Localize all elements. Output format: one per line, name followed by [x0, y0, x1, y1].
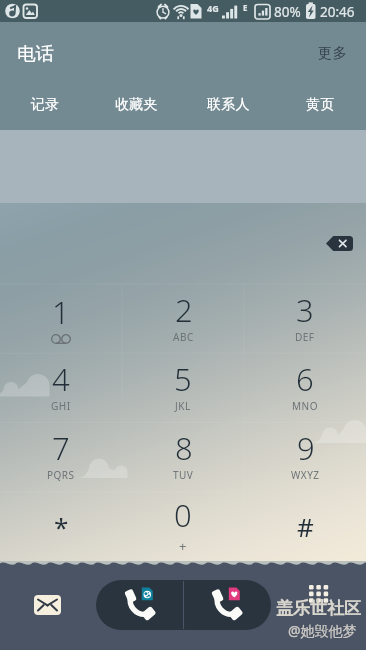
staticText: 8 [175, 427, 193, 469]
staticText: 80% [274, 3, 301, 21]
staticText: 2 [175, 289, 193, 331]
staticText: ABC [173, 330, 194, 344]
button[interactable]: 7 [0, 423, 122, 492]
button[interactable]: Backspace [326, 236, 353, 251]
staticText: 更多 [318, 44, 347, 62]
button[interactable]: Call with SIM 1 [96, 580, 183, 630]
staticText: GHI [51, 399, 71, 413]
staticText: 7 [52, 427, 70, 469]
button[interactable]: 2 [122, 284, 244, 354]
staticText: 记录 [31, 96, 60, 114]
staticText: # [297, 509, 314, 544]
staticText: 1 [52, 291, 70, 333]
staticText: 4 [52, 358, 70, 400]
staticText: PQRS [47, 468, 75, 482]
button[interactable]: 更多 [299, 30, 366, 76]
staticText: 黄页 [306, 96, 335, 114]
staticText: DEF [295, 330, 315, 344]
staticText: 盖乐世社区 [276, 598, 361, 619]
staticText: TUV [173, 468, 194, 482]
button[interactable]: Call with SIM 2 [183, 580, 271, 630]
staticText: 电话 [17, 42, 54, 65]
staticText: 4G [207, 2, 219, 14]
staticText: E [243, 2, 248, 13]
staticText: 0 [174, 494, 192, 536]
staticText: MNO [292, 399, 318, 413]
staticText: WXYZ [291, 468, 320, 482]
staticText: * [54, 509, 69, 544]
staticText: 5 [174, 358, 192, 400]
staticText: 9 [297, 427, 315, 469]
button[interactable]: 8 [122, 423, 244, 492]
button[interactable]: 4 [0, 354, 122, 423]
button[interactable]: 记录 [0, 74, 91, 130]
button[interactable]: 0 [122, 492, 244, 561]
staticText: 6 [296, 358, 314, 400]
button[interactable]: 收藏夹 [91, 74, 182, 130]
button[interactable]: # [244, 492, 366, 561]
staticText: @她毁他梦 [288, 621, 357, 640]
button[interactable]: 9 [244, 423, 366, 492]
button[interactable]: 3 [244, 284, 366, 354]
button[interactable]: 联系人 [182, 74, 274, 130]
button[interactable]: * [0, 492, 122, 561]
staticText: 3 [296, 289, 314, 331]
button[interactable]: 1 [0, 284, 122, 354]
button[interactable]: 黄页 [274, 74, 366, 130]
staticText: 20:46 [320, 3, 355, 21]
button[interactable]: Messages [34, 595, 61, 615]
staticText: + [179, 537, 187, 555]
staticText: 联系人 [207, 96, 250, 114]
staticText: 收藏夹 [115, 96, 158, 114]
button[interactable]: 5 [122, 354, 244, 423]
button[interactable]: 6 [244, 354, 366, 423]
staticText: JKL [175, 399, 191, 413]
